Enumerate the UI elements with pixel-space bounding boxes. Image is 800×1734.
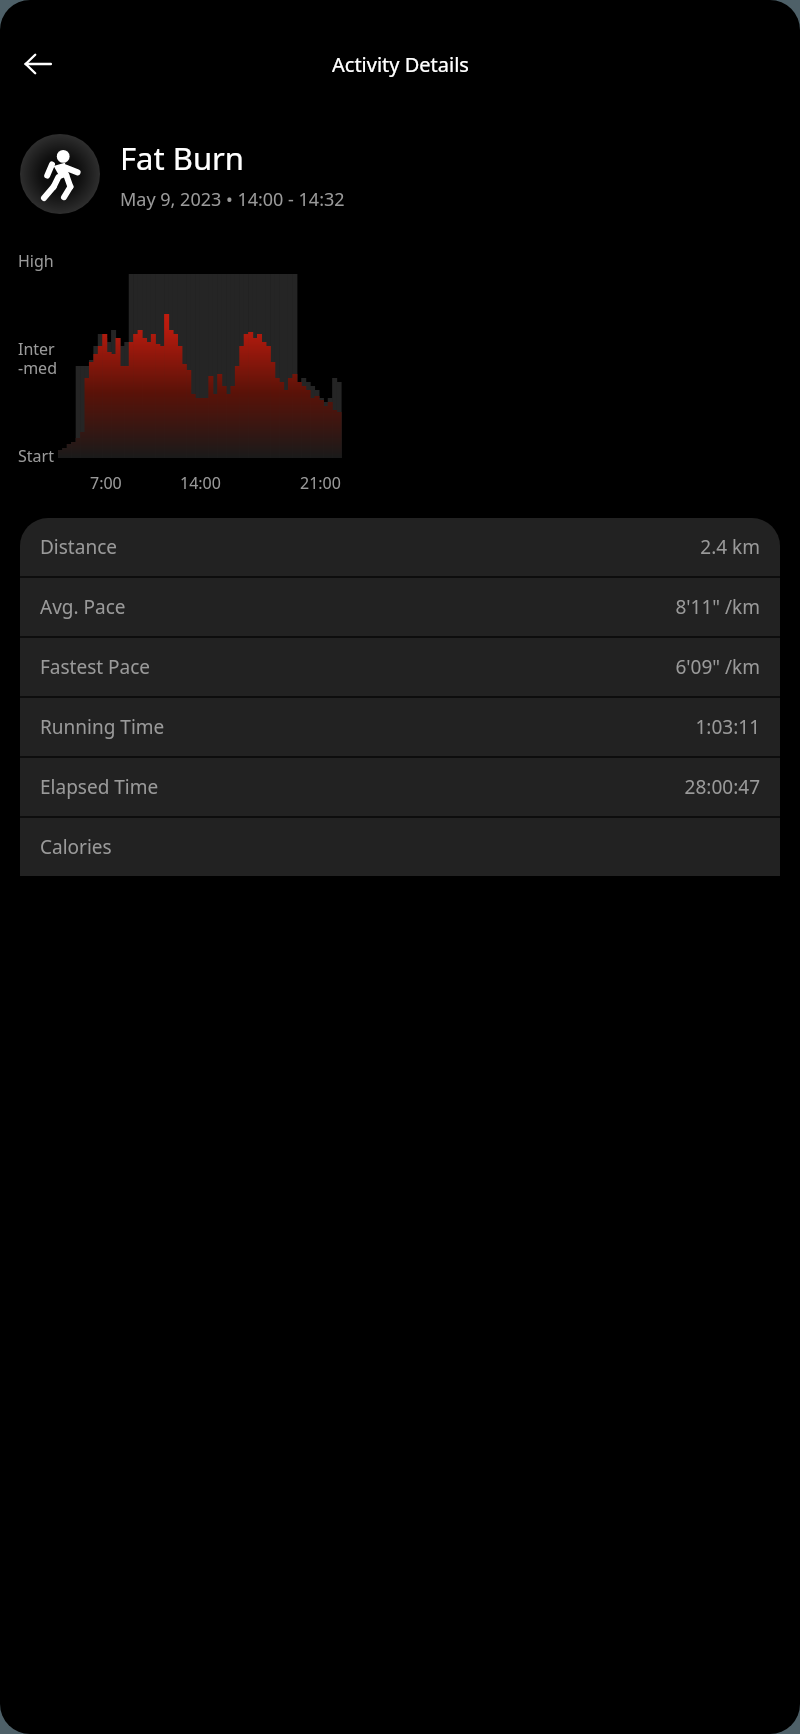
button[interactable]: Distance (20, 518, 780, 576)
button[interactable]: Fastest Pace (20, 638, 780, 696)
staticText: 6'09" /km (675, 654, 760, 680)
staticText: May 9, 2023 • 14:00 - 14:32 (120, 187, 345, 212)
staticText: Inter -med (18, 338, 57, 379)
staticText: Running Time (40, 714, 165, 740)
button[interactable]: Calories (20, 818, 780, 876)
staticText: High (18, 250, 54, 272)
staticText: Fastest Pace (40, 654, 151, 680)
staticText: 14:00 (180, 472, 221, 494)
staticText: 7:00 (90, 472, 122, 494)
staticText: Activity Details (332, 51, 469, 78)
staticText: Elapsed Time (40, 774, 159, 800)
staticText: 1:03:11 (695, 714, 760, 740)
staticText: Fat Burn (120, 137, 244, 179)
staticText: Avg. Pace (40, 594, 126, 620)
staticText: 21:00 (300, 472, 341, 494)
button[interactable]: Back (14, 40, 62, 88)
button[interactable]: Avg. Pace (20, 578, 780, 636)
staticText: Start (18, 445, 54, 467)
button[interactable]: Running Time (20, 698, 780, 756)
staticText: Distance (40, 534, 117, 560)
staticText: Calories (40, 834, 112, 860)
staticText: 28:00:47 (684, 774, 760, 800)
staticText: 8'11" /km (675, 594, 760, 620)
button[interactable]: Elapsed Time (20, 758, 780, 816)
staticText: 2.4 km (700, 534, 760, 560)
